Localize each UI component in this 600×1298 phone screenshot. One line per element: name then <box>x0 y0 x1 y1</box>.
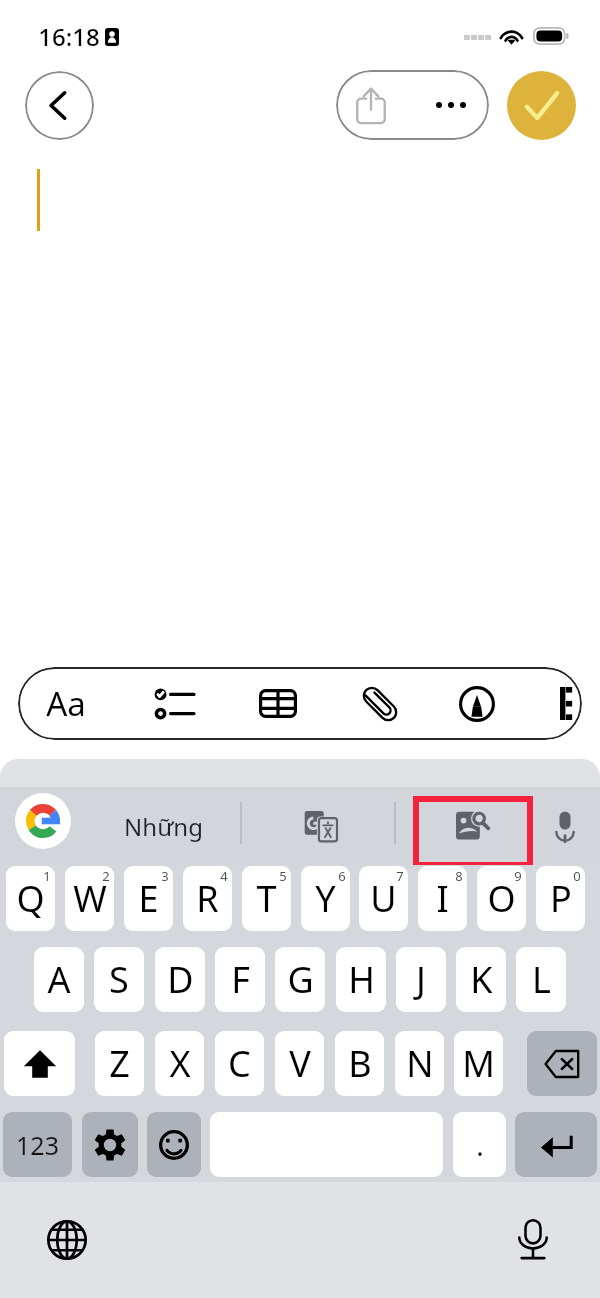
staticText: 9 <box>514 867 522 885</box>
staticText: D <box>167 955 194 1004</box>
staticText: T <box>256 874 277 923</box>
staticText: C <box>228 1039 251 1088</box>
button[interactable]: Voice search <box>537 787 593 865</box>
button[interactable]: S <box>94 947 144 1012</box>
staticText: F <box>231 955 250 1004</box>
staticText: N <box>406 1039 434 1088</box>
button[interactable]: Q <box>6 866 55 931</box>
button[interactable]: Voice input <box>498 1182 568 1298</box>
staticText: V <box>289 1039 311 1088</box>
staticText: P <box>550 874 572 923</box>
button[interactable]: Done <box>507 71 576 140</box>
staticText: 123 <box>16 1128 59 1162</box>
staticText: Y <box>315 874 336 923</box>
staticText: Aa <box>46 681 86 726</box>
button[interactable]: Emoji <box>147 1112 201 1177</box>
button[interactable]: Share <box>338 70 404 140</box>
button[interactable]: Scan document <box>541 667 582 740</box>
staticText: 6 <box>338 867 346 885</box>
button[interactable]: U <box>359 866 408 931</box>
staticText: U <box>370 874 397 923</box>
button[interactable]: Attach file <box>342 667 418 740</box>
button[interactable]: N <box>395 1031 444 1096</box>
button[interactable]: Enter <box>515 1112 597 1177</box>
button[interactable]: Image search <box>445 787 501 865</box>
button[interactable]: Table <box>240 667 316 740</box>
staticText: Những <box>124 810 203 843</box>
staticText: Q <box>16 874 45 923</box>
staticText: . <box>476 1126 484 1164</box>
staticText: J <box>416 955 426 1004</box>
button[interactable]: Shift <box>4 1031 75 1096</box>
staticText: X <box>169 1039 191 1088</box>
staticText: I <box>436 874 449 923</box>
button[interactable]: Backspace <box>527 1031 597 1096</box>
button[interactable]: I <box>418 866 467 931</box>
staticText: M <box>462 1039 495 1088</box>
button[interactable]: . <box>453 1112 506 1177</box>
button[interactable]: V <box>275 1031 324 1096</box>
staticText: 4 <box>220 867 228 885</box>
staticText: B <box>348 1039 372 1088</box>
staticText: R <box>196 874 219 923</box>
staticText: 2 <box>102 867 110 885</box>
button[interactable]: Markup <box>439 667 515 740</box>
button[interactable]: More options <box>412 70 489 140</box>
button[interactable]: Google <box>15 793 71 849</box>
staticText: 16:18 <box>38 20 100 53</box>
button[interactable]: E <box>124 866 173 931</box>
staticText: W <box>73 874 107 923</box>
staticText: 3 <box>161 867 169 885</box>
button[interactable]: Checklist <box>135 667 211 740</box>
button[interactable]: W <box>65 866 114 931</box>
button[interactable]: P <box>536 866 585 931</box>
staticText: 8 <box>455 867 463 885</box>
button[interactable]: A <box>34 947 84 1012</box>
button[interactable]: D <box>155 947 205 1012</box>
button[interactable]: X <box>155 1031 204 1096</box>
button[interactable]: C <box>215 1031 264 1096</box>
staticText: H <box>348 955 375 1004</box>
staticText: Z <box>109 1039 130 1088</box>
button[interactable]: L <box>516 947 566 1012</box>
button[interactable]: O <box>477 866 526 931</box>
button[interactable]: K <box>456 947 506 1012</box>
button[interactable]: Z <box>95 1031 144 1096</box>
button[interactable]: Numbers and symbols <box>3 1112 72 1177</box>
staticText: E <box>138 874 159 923</box>
button[interactable]: R <box>183 866 232 931</box>
button[interactable]: J <box>396 947 446 1012</box>
button[interactable]: Aa <box>26 667 106 740</box>
button[interactable]: F <box>215 947 265 1012</box>
staticText: 7 <box>396 867 404 885</box>
staticText: K <box>470 955 493 1004</box>
staticText: S <box>109 955 129 1004</box>
button[interactable]: M <box>454 1031 503 1096</box>
staticText: 0 <box>573 867 581 885</box>
button[interactable]: H <box>336 947 386 1012</box>
staticText: 1 <box>43 867 51 885</box>
staticText: O <box>487 874 516 923</box>
staticText: G <box>287 955 314 1004</box>
staticText: L <box>532 955 551 1004</box>
button[interactable]: Y <box>301 866 350 931</box>
button[interactable]: T <box>242 866 291 931</box>
button[interactable]: Translate <box>293 787 349 865</box>
button[interactable]: G <box>275 947 325 1012</box>
button[interactable]: Change keyboard <box>32 1182 102 1298</box>
staticText: 5 <box>279 867 287 885</box>
button[interactable]: B <box>335 1031 384 1096</box>
button[interactable]: Settings <box>82 1112 138 1177</box>
staticText: A <box>47 955 71 1004</box>
button[interactable]: Những <box>113 787 213 865</box>
button[interactable]: Back <box>25 71 94 140</box>
